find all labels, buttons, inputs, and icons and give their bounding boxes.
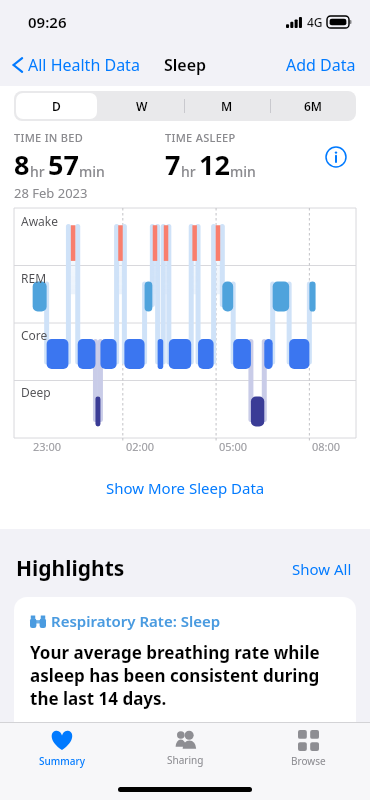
- staticText: 05:00: [219, 439, 248, 454]
- staticText: 4G: [307, 14, 323, 30]
- button[interactable]: 6M: [270, 91, 356, 121]
- staticText: Show More Sleep Data: [106, 478, 265, 498]
- staticText: M: [221, 98, 233, 114]
- staticText: D: [52, 98, 61, 114]
- button[interactable]: Add Data: [282, 50, 360, 80]
- staticText: W: [136, 98, 148, 114]
- staticText: 09:26: [28, 12, 67, 32]
- staticText: Awake: [21, 213, 59, 229]
- button[interactable]: D: [14, 91, 99, 121]
- staticText: 02:00: [126, 439, 155, 454]
- staticText: 28 Feb 2023: [14, 184, 88, 202]
- staticText: min: [79, 162, 105, 181]
- staticText: Summary: [39, 754, 85, 768]
- staticText: 23:00: [33, 439, 62, 454]
- staticText: Show All: [292, 559, 352, 579]
- staticText: 57: [48, 146, 79, 183]
- staticText: Your average breathing rate while asleep…: [30, 641, 340, 710]
- button[interactable]: Information: [316, 146, 356, 168]
- button[interactable]: Show All: [290, 557, 354, 581]
- staticText: REM: [21, 270, 47, 286]
- staticText: hr: [30, 162, 45, 181]
- staticText: Respiratory Rate: Sleep: [51, 611, 221, 631]
- staticText: 12: [199, 146, 230, 183]
- button[interactable]: Summary: [0, 723, 124, 774]
- button[interactable]: All Health Data: [8, 50, 144, 80]
- staticText: Browse: [291, 754, 326, 768]
- staticText: Deep: [21, 384, 51, 400]
- staticText: Add Data: [286, 54, 356, 76]
- staticText: TIME IN BED: [14, 130, 84, 145]
- staticText: 7: [165, 146, 181, 183]
- staticText: 8: [14, 146, 30, 183]
- button[interactable]: Browse: [247, 723, 370, 774]
- staticText: 6M: [304, 98, 323, 114]
- staticText: Core: [21, 327, 48, 343]
- button[interactable]: Sharing: [124, 723, 247, 774]
- staticText: min: [230, 162, 256, 181]
- button[interactable]: W: [99, 91, 184, 121]
- staticText: Highlights: [16, 554, 125, 583]
- button[interactable]: Show More Sleep Data: [0, 478, 370, 498]
- staticText: 08:00: [312, 439, 341, 454]
- staticText: All Health Data: [28, 54, 140, 76]
- button[interactable]: Respiratory Rate: Sleep: [14, 597, 356, 757]
- staticText: Sleep: [164, 54, 207, 76]
- staticText: Sharing: [167, 753, 204, 767]
- staticText: hr: [181, 162, 196, 181]
- staticText: TIME ASLEEP: [165, 130, 236, 145]
- button[interactable]: M: [184, 91, 270, 121]
